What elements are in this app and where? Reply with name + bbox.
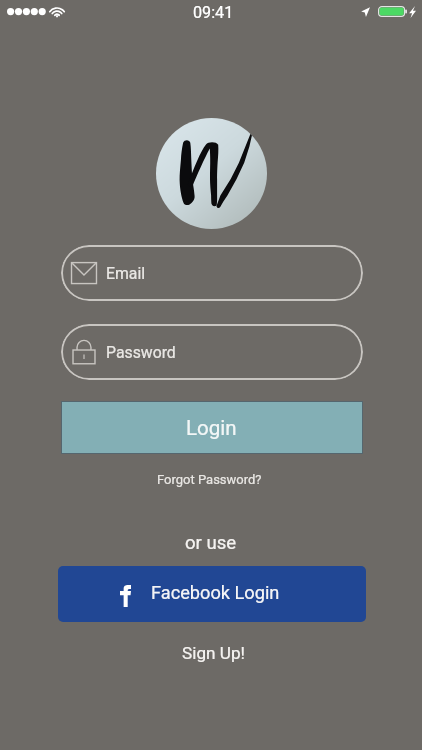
staticText: Login bbox=[186, 416, 237, 440]
staticText: Facebook Login bbox=[151, 582, 280, 603]
other: App logo bbox=[156, 118, 267, 229]
button[interactable]: Sign Up! bbox=[175, 641, 249, 665]
staticText: Forgot Password? bbox=[157, 472, 262, 487]
staticText: Email bbox=[106, 264, 146, 283]
staticText: Sign Up! bbox=[182, 643, 246, 663]
button[interactable]: Password bbox=[61, 324, 363, 380]
button[interactable]: Login bbox=[62, 402, 362, 453]
button[interactable]: Email bbox=[61, 245, 363, 301]
button[interactable]: Facebook Login bbox=[58, 566, 366, 622]
staticText: Password bbox=[106, 343, 176, 362]
staticText: or use bbox=[185, 532, 237, 554]
staticText: 09:41 bbox=[193, 3, 234, 22]
button[interactable]: Forgot Password? bbox=[150, 469, 272, 491]
